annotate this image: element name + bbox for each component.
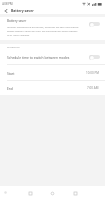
- staticText: 4:08 PM: [2, 2, 13, 6]
- staticText: Battery saver: [11, 8, 34, 13]
- button[interactable]: End: [0, 81, 105, 95]
- staticText: 10:00 PM: [86, 71, 99, 75]
- button[interactable]: Back: [19, 186, 41, 200]
- button[interactable]: Schedule time to switch between modes: [0, 49, 105, 64]
- staticText: Schedule time to switch between modes: [7, 55, 87, 59]
- button[interactable]: Toggle: [89, 54, 100, 60]
- button[interactable]: Home: [41, 186, 64, 200]
- staticText: SCHEDULE: [7, 45, 20, 48]
- staticText: End: [7, 86, 87, 90]
- button[interactable]: Start: [0, 65, 105, 80]
- button[interactable]: Recents: [64, 186, 86, 200]
- staticText: Monitor background processes, optimize o…: [7, 25, 80, 37]
- button[interactable]: Toggle: [89, 21, 100, 27]
- staticText: Battery saver: [7, 19, 27, 23]
- staticText: 7:00 AM: [87, 86, 99, 90]
- staticText: Start: [7, 71, 86, 75]
- button[interactable]: Hide: [1, 188, 10, 197]
- button[interactable]: Battery saver: [0, 17, 105, 40]
- button[interactable]: Back: [0, 7, 11, 14]
